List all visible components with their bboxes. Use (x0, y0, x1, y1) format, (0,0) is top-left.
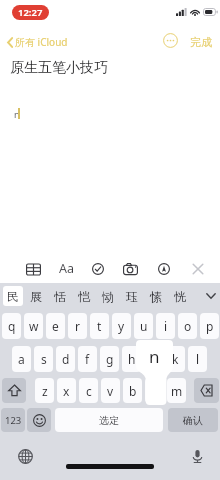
button[interactable]: 珏 (122, 286, 142, 306)
button[interactable]: 恍 (170, 286, 190, 306)
button[interactable]: Dictate (187, 446, 207, 466)
staticText: 恸 (102, 289, 114, 304)
button[interactable]: Aa (57, 259, 76, 278)
staticText: l (196, 351, 200, 367)
button[interactable]: 恬 (50, 286, 70, 306)
staticText: q (8, 318, 16, 334)
button[interactable]: a (12, 346, 31, 372)
button[interactable]: r (68, 313, 87, 339)
button[interactable]: Backspace (194, 378, 219, 403)
staticText: z (42, 383, 48, 399)
staticText: p (206, 318, 214, 334)
button[interactable]: 确认 (168, 408, 218, 432)
button[interactable]: o (178, 313, 197, 339)
button[interactable]: Camera (120, 259, 140, 279)
button[interactable]: More options (163, 33, 178, 48)
button[interactable]: x (57, 378, 76, 403)
staticText: x (63, 383, 70, 399)
staticText: r (75, 318, 80, 334)
staticText: k (172, 351, 179, 367)
staticText: i (164, 318, 168, 334)
button[interactable]: t (90, 313, 109, 339)
button[interactable]: l (188, 346, 207, 372)
staticText: 完成 (190, 35, 212, 49)
button[interactable]: Shift (2, 378, 26, 403)
staticText: 展 (30, 289, 42, 304)
button[interactable]: Checklist (88, 259, 108, 279)
button[interactable]: z (35, 378, 54, 403)
staticText: 珏 (126, 289, 138, 304)
button[interactable]: 民 (3, 286, 23, 306)
staticText: 民 (7, 289, 19, 304)
staticText: 愫 (150, 289, 162, 304)
staticText: b (129, 383, 137, 399)
button[interactable]: 展 (26, 286, 46, 306)
staticText: m (171, 383, 183, 399)
button[interactable]: j (144, 346, 163, 372)
button[interactable]: v (101, 378, 120, 403)
button[interactable]: q (2, 313, 21, 339)
staticText: g (106, 351, 114, 367)
button[interactable]: y (112, 313, 131, 339)
staticText: n (14, 108, 20, 120)
button[interactable]: e (46, 313, 65, 339)
staticText: 123 (5, 414, 22, 427)
staticText: 恺 (78, 289, 90, 304)
button[interactable]: 恺 (74, 286, 94, 306)
button[interactable]: g (100, 346, 119, 372)
staticText: o (184, 318, 192, 334)
button[interactable]: u (134, 313, 153, 339)
staticText: h (128, 351, 136, 367)
button[interactable]: Emoji (27, 408, 51, 432)
button[interactable]: Insert table (23, 259, 43, 279)
staticText: a (18, 351, 25, 367)
button[interactable]: s (34, 346, 53, 372)
button[interactable]: Switch keyboard (15, 446, 35, 466)
button[interactable]: 所有 iCloud (4, 32, 71, 52)
button[interactable]: h (122, 346, 141, 372)
button[interactable]: b (123, 378, 142, 403)
staticText: 确认 (183, 414, 203, 427)
button[interactable]: m (167, 378, 186, 403)
staticText: f (85, 351, 90, 367)
staticText: j (152, 351, 156, 367)
button[interactable]: k (166, 346, 185, 372)
staticText: 恍 (174, 289, 186, 304)
staticText: Aa (59, 260, 75, 277)
staticText: 选定 (99, 414, 119, 427)
button[interactable]: Close keyboard (188, 259, 208, 279)
staticText: 所有 iCloud (15, 35, 68, 49)
button[interactable]: 愫 (146, 286, 166, 306)
staticText: v (107, 383, 114, 399)
button[interactable]: p (200, 313, 219, 339)
button[interactable]: 123 (1, 408, 25, 432)
staticText: c (86, 383, 92, 399)
staticText: s (41, 351, 47, 367)
staticText: y (118, 318, 125, 334)
button[interactable]: 完成 (188, 33, 214, 51)
staticText: 12:27 (18, 6, 43, 19)
staticText: t (97, 318, 102, 334)
staticText: u (140, 318, 148, 334)
staticText: 原生五笔小技巧 (10, 59, 108, 77)
button[interactable]: f (78, 346, 97, 372)
staticText: w (29, 318, 39, 334)
button[interactable]: More candidates (201, 286, 220, 306)
button[interactable]: d (56, 346, 75, 372)
button[interactable]: Markup (154, 259, 174, 279)
button[interactable]: i (156, 313, 175, 339)
button[interactable]: 恸 (98, 286, 118, 306)
staticText: d (62, 351, 70, 367)
button[interactable]: 选定 (55, 408, 163, 432)
button[interactable]: w (24, 313, 43, 339)
staticText: n (149, 345, 160, 367)
button[interactable]: c (79, 378, 98, 403)
staticText: e (52, 318, 59, 334)
staticText: 恬 (54, 289, 66, 304)
